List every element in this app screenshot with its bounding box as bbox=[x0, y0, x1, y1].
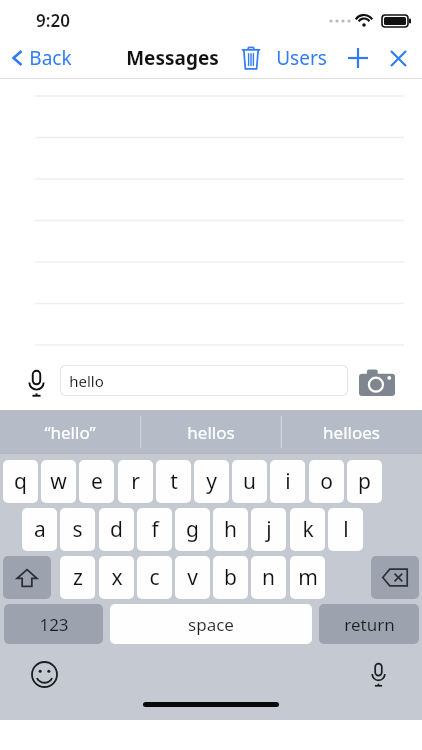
button[interactable]: return bbox=[319, 604, 419, 644]
staticText: b bbox=[224, 563, 237, 592]
staticText: v bbox=[187, 563, 198, 592]
staticText: t bbox=[170, 467, 178, 496]
staticText: “hello” bbox=[44, 421, 96, 444]
staticText: f bbox=[151, 515, 159, 544]
button[interactable]: space bbox=[110, 604, 312, 644]
staticText: 9:20 bbox=[36, 9, 70, 32]
staticText: z bbox=[73, 563, 83, 592]
staticText: y bbox=[206, 467, 217, 496]
staticText: hellos bbox=[187, 421, 235, 444]
staticText: m bbox=[298, 563, 318, 592]
button[interactable]: helloes bbox=[281, 410, 422, 454]
button[interactable]: g bbox=[175, 508, 210, 551]
button[interactable]: i bbox=[270, 460, 305, 503]
button[interactable]: d bbox=[99, 508, 134, 551]
staticText: c bbox=[149, 563, 160, 592]
staticText: u bbox=[243, 467, 256, 496]
button[interactable]: t bbox=[156, 460, 191, 503]
staticText: s bbox=[72, 515, 83, 544]
button[interactable]: 123 bbox=[4, 604, 103, 644]
staticText: i bbox=[285, 467, 291, 496]
staticText: k bbox=[302, 515, 314, 544]
staticText: return bbox=[344, 613, 395, 636]
staticText: d bbox=[110, 515, 123, 544]
button[interactable]: Camera bbox=[354, 355, 400, 410]
staticText: w bbox=[50, 467, 67, 496]
button[interactable]: e bbox=[79, 460, 114, 503]
button[interactable]: f bbox=[137, 508, 172, 551]
button[interactable]: Dictation bbox=[358, 654, 398, 694]
staticText: l bbox=[343, 515, 349, 544]
button[interactable]: Close bbox=[380, 38, 416, 78]
button[interactable]: r bbox=[118, 460, 153, 503]
staticText: space bbox=[188, 613, 234, 636]
button[interactable]: w bbox=[41, 460, 76, 503]
button[interactable]: “hello” bbox=[0, 410, 140, 454]
staticText: Messages bbox=[126, 45, 219, 71]
button[interactable]: y bbox=[194, 460, 229, 503]
staticText: e bbox=[91, 467, 103, 496]
button[interactable]: z bbox=[60, 556, 95, 599]
staticText: p bbox=[358, 467, 371, 496]
staticText: r bbox=[131, 467, 140, 496]
staticText: 123 bbox=[39, 613, 69, 636]
button[interactable]: s bbox=[60, 508, 95, 551]
staticText: hello bbox=[69, 371, 104, 391]
button[interactable]: p bbox=[347, 460, 382, 503]
button[interactable]: n bbox=[251, 556, 286, 599]
staticText: n bbox=[262, 563, 275, 592]
staticText: Users bbox=[276, 45, 327, 71]
button[interactable]: j bbox=[251, 508, 286, 551]
button[interactable]: m bbox=[290, 556, 325, 599]
staticText: h bbox=[224, 515, 237, 544]
button[interactable]: b bbox=[213, 556, 248, 599]
button[interactable]: Back bbox=[6, 38, 76, 78]
button[interactable]: o bbox=[309, 460, 344, 503]
staticText: a bbox=[34, 515, 46, 544]
button[interactable]: c bbox=[137, 556, 172, 599]
staticText: Back bbox=[29, 45, 72, 71]
button[interactable]: hello bbox=[60, 365, 348, 396]
staticText: j bbox=[266, 515, 272, 544]
button[interactable]: q bbox=[3, 460, 38, 503]
button[interactable]: a bbox=[22, 508, 57, 551]
staticText: g bbox=[186, 515, 199, 544]
button[interactable]: l bbox=[328, 508, 363, 551]
button[interactable]: Users bbox=[272, 38, 331, 78]
button[interactable]: Delete bbox=[232, 38, 270, 78]
staticText: helloes bbox=[323, 421, 380, 444]
button[interactable]: Emoji bbox=[24, 654, 64, 694]
button[interactable]: v bbox=[175, 556, 210, 599]
button[interactable]: Messages bbox=[126, 38, 219, 78]
button[interactable]: k bbox=[290, 508, 325, 551]
button[interactable]: x bbox=[99, 556, 134, 599]
button[interactable]: Add bbox=[340, 38, 376, 78]
button[interactable]: u bbox=[232, 460, 267, 503]
staticText: x bbox=[111, 563, 123, 592]
button[interactable]: hellos bbox=[140, 410, 281, 454]
button[interactable]: Shift bbox=[3, 556, 51, 599]
button[interactable]: Voice input bbox=[18, 355, 54, 410]
button[interactable]: h bbox=[213, 508, 248, 551]
button[interactable]: Backspace bbox=[371, 556, 419, 599]
staticText: q bbox=[14, 467, 27, 496]
staticText: o bbox=[320, 467, 333, 496]
